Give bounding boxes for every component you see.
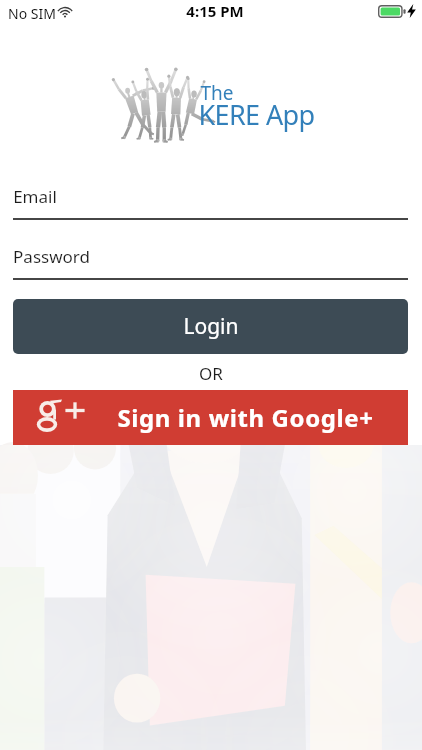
staticText: 4:15 PM	[186, 1, 244, 21]
staticText: The	[200, 80, 234, 106]
staticText: Login	[183, 312, 239, 341]
staticText: Password	[13, 245, 90, 268]
button[interactable]: Sign in with Google+	[13, 390, 408, 445]
staticText: No SIM	[8, 4, 56, 23]
button[interactable]: Login	[13, 299, 408, 354]
staticText: KERE App	[198, 96, 315, 133]
staticText: OR	[199, 362, 223, 385]
staticText: Sign in with Google+	[117, 401, 374, 434]
staticText: Email	[13, 185, 57, 208]
